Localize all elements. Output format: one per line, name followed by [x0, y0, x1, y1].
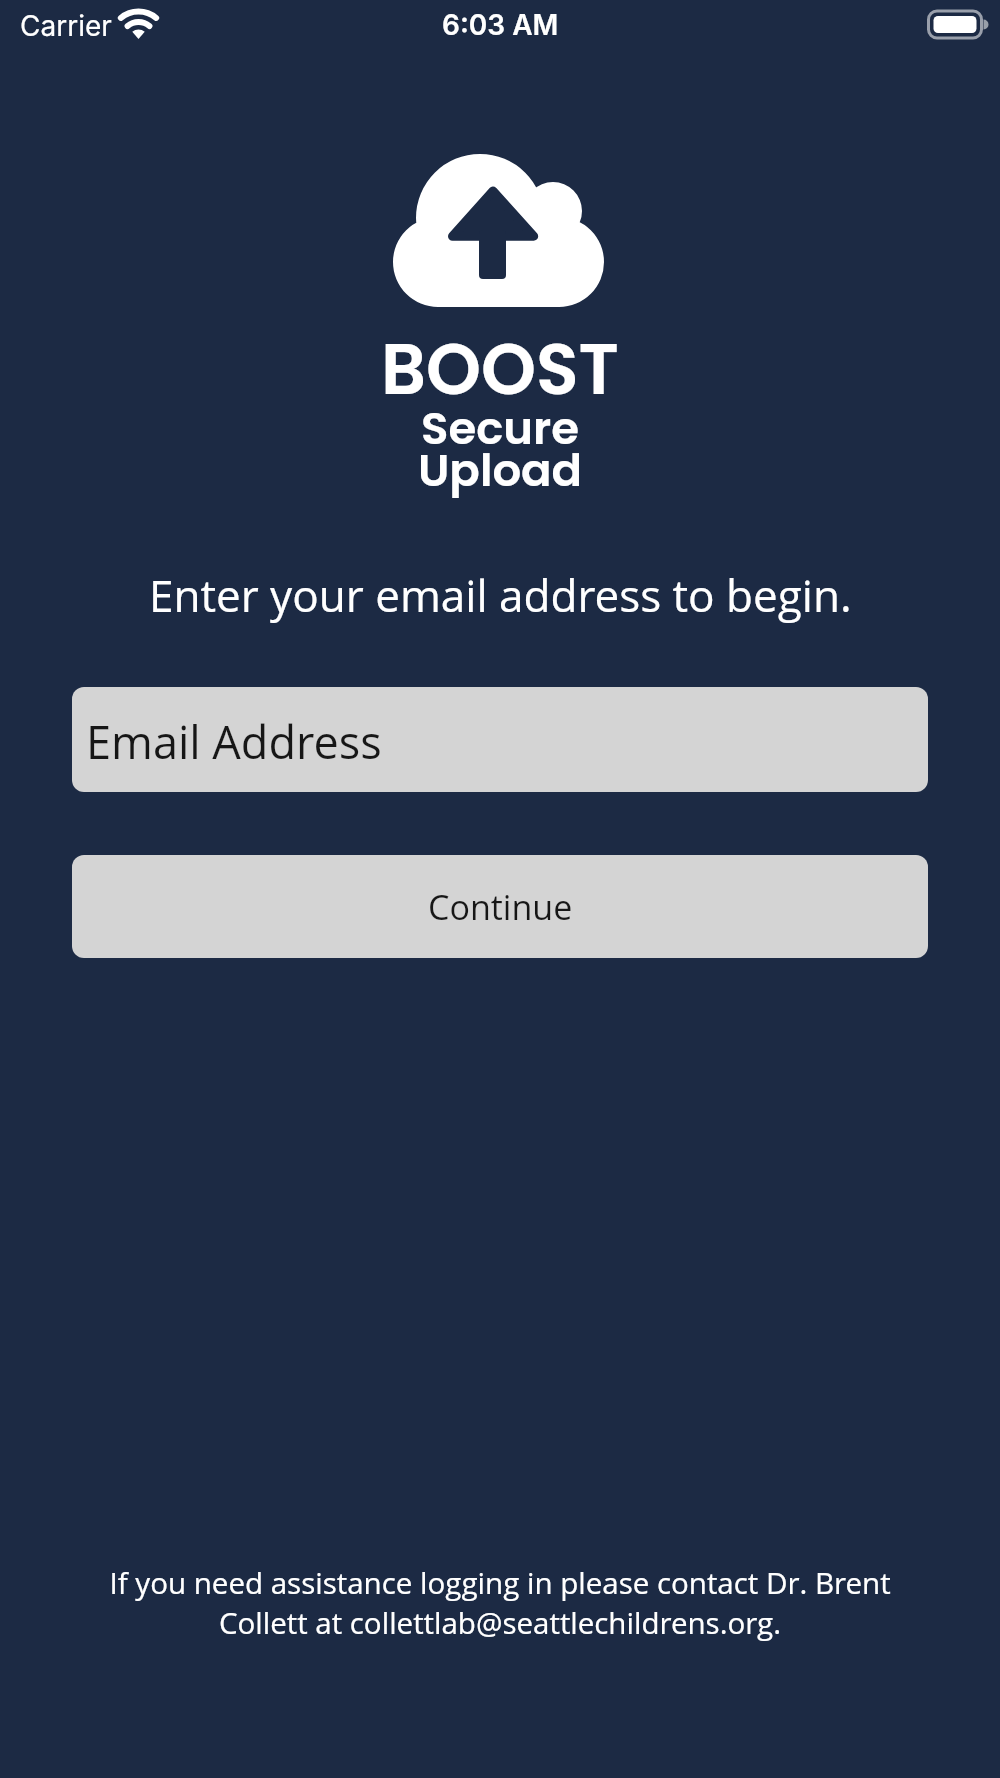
staticText: Upload	[418, 439, 583, 502]
button[interactable]: Continue	[72, 855, 928, 958]
staticText: Secure	[421, 397, 579, 460]
staticText: 6:03 AM	[442, 8, 559, 42]
staticText: If you need assistance logging in please…	[109, 1562, 891, 1642]
staticText: Enter your email address to begin.	[149, 565, 852, 625]
button[interactable]: Email Address	[72, 687, 928, 792]
staticText: Email Address	[86, 711, 382, 772]
staticText: Carrier	[20, 9, 112, 43]
staticText: BOOST	[381, 320, 619, 418]
staticText: Continue	[428, 884, 573, 930]
